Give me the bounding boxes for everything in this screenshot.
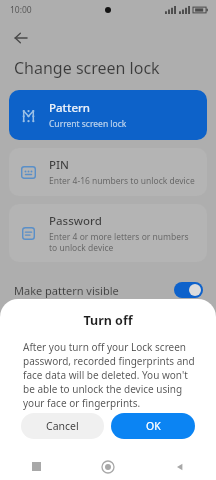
- button[interactable]: PIN: [9, 148, 207, 196]
- staticText: Change screen lock: [14, 57, 160, 79]
- button[interactable]: Home: [72, 453, 144, 480]
- button[interactable]: Cancel: [21, 413, 104, 439]
- staticText: Enter 4 or more letters or numbers to un…: [49, 231, 195, 253]
- staticText: Turn off: [0, 312, 216, 329]
- staticText: Pattern: [49, 100, 91, 116]
- staticText: After you turn off your Lock screen pass…: [23, 340, 195, 410]
- staticText: Current screen lock: [49, 118, 127, 130]
- staticText: 10:00: [10, 4, 32, 16]
- staticText: Make pattern visible: [14, 283, 119, 298]
- button[interactable]: Make pattern visible: [0, 273, 216, 307]
- staticText: Password: [49, 213, 102, 229]
- staticText: OK: [146, 419, 161, 433]
- button[interactable]: Back: [144, 453, 216, 480]
- button[interactable]: Pattern: [9, 90, 207, 140]
- staticText: PIN: [49, 157, 70, 173]
- button[interactable]: Password: [9, 204, 207, 262]
- button[interactable]: Back: [6, 23, 36, 53]
- button[interactable]: OK: [111, 413, 195, 439]
- button[interactable]: Recents: [0, 453, 72, 480]
- staticText: Cancel: [46, 419, 79, 433]
- staticText: Enter 4-16 numbers to unlock device: [49, 175, 195, 187]
